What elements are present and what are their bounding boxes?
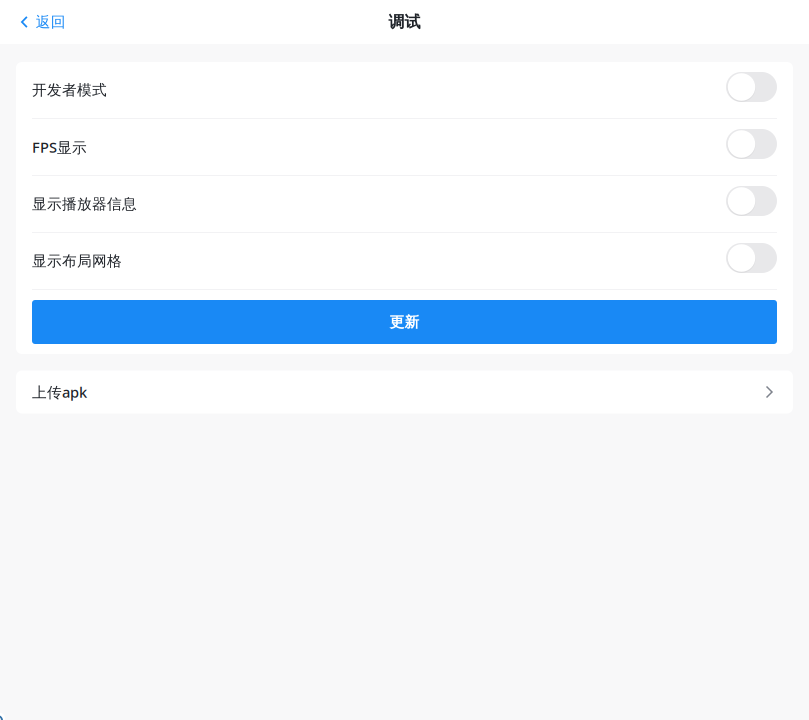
staticText: 显示布局网格	[32, 252, 122, 270]
button[interactable]: 上传apk	[16, 370, 793, 413]
staticText: 上传apk	[32, 382, 87, 402]
staticText: 开发者模式	[32, 81, 107, 99]
button[interactable]: 更新	[32, 300, 777, 344]
button[interactable]: 显示布局网格	[16, 233, 793, 289]
staticText: 调试	[388, 12, 420, 32]
button[interactable]: Debug overlay	[0, 713, 5, 720]
button[interactable]: 开发者模式	[16, 62, 793, 118]
staticText: 更新	[389, 313, 419, 331]
button[interactable]: FPS显示	[16, 119, 793, 175]
staticText: 显示播放器信息	[32, 195, 137, 213]
staticText: FPS显示	[32, 137, 87, 157]
staticText: 返回	[36, 13, 66, 31]
button[interactable]: 返回	[0, 0, 80, 44]
button[interactable]: 显示播放器信息	[16, 176, 793, 232]
